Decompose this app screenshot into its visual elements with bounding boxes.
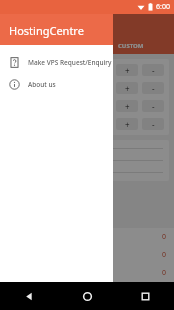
button[interactable]: - <box>142 100 164 112</box>
staticText: HostingCentre <box>34 19 111 34</box>
staticText: + <box>125 101 130 112</box>
button[interactable]: + <box>116 118 138 130</box>
button[interactable]: PRICE <box>0 38 87 54</box>
button[interactable]: About us <box>0 75 113 93</box>
staticText: + <box>125 83 130 94</box>
staticText: HostingCentre <box>9 23 84 38</box>
button[interactable]: + <box>116 64 138 76</box>
button[interactable]: + <box>116 82 138 94</box>
staticText: - <box>152 101 155 112</box>
staticText: CUSTOM <box>118 42 144 50</box>
staticText: RAM <box>10 83 112 93</box>
staticText: + <box>125 65 130 76</box>
staticText: - <box>152 119 155 130</box>
staticText: 0 <box>162 232 167 242</box>
button[interactable]: CUSTOM <box>87 38 174 54</box>
button[interactable]: Make VPS Request/Enquiry <box>0 53 113 71</box>
staticText: 0 <box>162 250 167 260</box>
staticText: Make VPS Request/Enquiry <box>28 58 112 67</box>
button[interactable]: + <box>116 100 138 112</box>
staticText: About us <box>28 80 56 89</box>
staticText: 0 <box>162 268 167 278</box>
staticText: 6:00 <box>156 2 170 12</box>
button[interactable]: Back <box>0 282 58 310</box>
staticText: - <box>152 65 155 76</box>
staticText: + <box>125 119 130 130</box>
button[interactable]: Recents <box>116 282 174 310</box>
button[interactable]: - <box>142 64 164 76</box>
staticText: - <box>152 83 155 94</box>
button[interactable]: - <box>142 82 164 94</box>
staticText: PRICE <box>35 42 53 50</box>
staticText: RAM <box>10 65 112 75</box>
button[interactable]: Home <box>58 282 116 310</box>
button[interactable]: - <box>142 118 164 130</box>
